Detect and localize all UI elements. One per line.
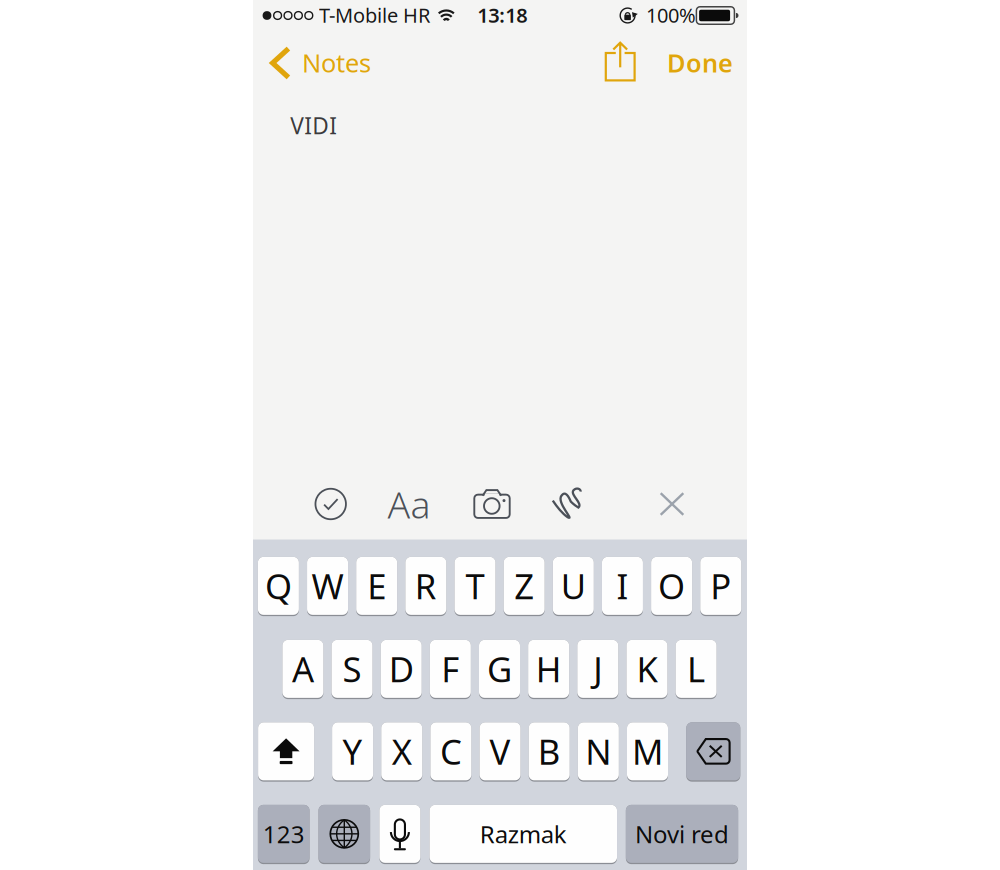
- staticText: 100%: [646, 2, 696, 28]
- staticText: B: [538, 728, 561, 774]
- button[interactable]: R: [405, 557, 446, 616]
- button[interactable]: X: [381, 722, 422, 782]
- button[interactable]: 123: [258, 805, 309, 864]
- button[interactable]: O: [651, 557, 692, 616]
- staticText: D: [389, 646, 414, 692]
- button[interactable]: Checklist: [303, 480, 359, 528]
- button[interactable]: Razmak: [430, 805, 617, 864]
- button[interactable]: Dictate: [379, 805, 420, 864]
- button[interactable]: L: [676, 640, 717, 699]
- button[interactable]: P: [700, 557, 741, 616]
- button[interactable]: Done: [660, 41, 740, 85]
- staticText: I: [616, 563, 628, 609]
- button[interactable]: A: [282, 640, 323, 699]
- button[interactable]: H: [528, 640, 569, 699]
- button[interactable]: U: [553, 557, 594, 616]
- button[interactable]: Notes: [253, 41, 379, 85]
- staticText: N: [585, 728, 611, 774]
- button[interactable]: S: [331, 640, 372, 699]
- staticText: G: [487, 646, 512, 692]
- button[interactable]: G: [479, 640, 520, 699]
- staticText: Razmak: [480, 818, 567, 850]
- staticText: V: [490, 728, 511, 774]
- staticText: X: [392, 728, 412, 774]
- button[interactable]: Hide keyboard: [646, 480, 698, 528]
- button[interactable]: Shift: [258, 722, 314, 782]
- staticText: Z: [514, 563, 534, 609]
- staticText: S: [342, 646, 361, 692]
- button[interactable]: C: [430, 722, 471, 782]
- button[interactable]: Y: [332, 722, 373, 782]
- staticText: Notes: [302, 46, 371, 79]
- staticText: F: [441, 646, 459, 692]
- staticText: H: [536, 646, 562, 692]
- staticText: 123: [263, 818, 305, 850]
- staticText: W: [311, 563, 343, 609]
- staticText: 13:18: [477, 2, 527, 28]
- button[interactable]: Markup: [541, 480, 593, 528]
- button[interactable]: W: [307, 557, 348, 616]
- staticText: U: [561, 563, 586, 609]
- button[interactable]: Novi red: [626, 805, 738, 864]
- button[interactable]: V: [480, 722, 521, 782]
- button[interactable]: N: [578, 722, 619, 782]
- button[interactable]: T: [454, 557, 495, 616]
- button[interactable]: I: [602, 557, 643, 616]
- button[interactable]: F: [430, 640, 471, 699]
- button[interactable]: Camera: [464, 480, 520, 528]
- button[interactable]: Delete: [686, 722, 740, 782]
- staticText: Aa: [387, 479, 430, 529]
- staticText: Novi red: [635, 818, 729, 850]
- staticText: C: [440, 728, 462, 774]
- button[interactable]: E: [356, 557, 397, 616]
- staticText: T: [465, 563, 484, 609]
- staticText: VIDI: [290, 110, 337, 140]
- button[interactable]: Z: [504, 557, 545, 616]
- button[interactable]: J: [577, 640, 618, 699]
- staticText: J: [593, 646, 602, 692]
- staticText: Q: [265, 563, 292, 609]
- button[interactable]: B: [529, 722, 570, 782]
- staticText: E: [367, 563, 386, 609]
- staticText: M: [632, 728, 663, 774]
- staticText: R: [415, 563, 437, 609]
- button[interactable]: D: [381, 640, 422, 699]
- staticText: A: [292, 646, 314, 692]
- button[interactable]: Text format: [381, 480, 437, 528]
- staticText: Done: [667, 46, 733, 79]
- button[interactable]: M: [627, 722, 668, 782]
- staticText: P: [710, 563, 731, 609]
- staticText: T-Mobile HR: [319, 2, 430, 28]
- button[interactable]: Share: [596, 38, 644, 84]
- staticText: L: [687, 646, 705, 692]
- button[interactable]: Next keyboard: [318, 805, 370, 864]
- button[interactable]: K: [626, 640, 667, 699]
- staticText: Y: [343, 728, 363, 774]
- staticText: O: [658, 563, 685, 609]
- button[interactable]: Q: [258, 557, 299, 616]
- staticText: K: [636, 646, 657, 692]
